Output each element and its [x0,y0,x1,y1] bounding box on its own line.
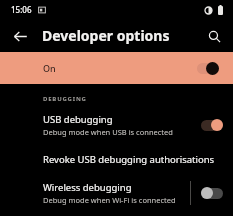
button[interactable]: Search [201,23,227,49]
staticText: DEBUGGING [43,95,87,103]
button[interactable]: Toggle wireless debugging [191,178,233,208]
button[interactable]: Revoke USB debugging authorisations [0,143,233,175]
staticText: Debug mode when Wi-Fi is connected [43,195,176,205]
button[interactable]: Wireless debugging [0,181,190,205]
staticText: Wireless debugging [43,181,132,194]
button[interactable]: On [0,52,233,84]
staticText: On [43,62,56,74]
staticText: Revoke USB debugging authorisations [43,153,215,166]
button[interactable]: Back [6,22,34,50]
staticText: Developer options [42,26,170,45]
staticText: Debug mode when USB is connected [43,127,173,137]
staticText: 15:06 [11,4,32,15]
staticText: USB debugging [43,113,113,126]
button[interactable]: USB debugging [0,107,233,143]
